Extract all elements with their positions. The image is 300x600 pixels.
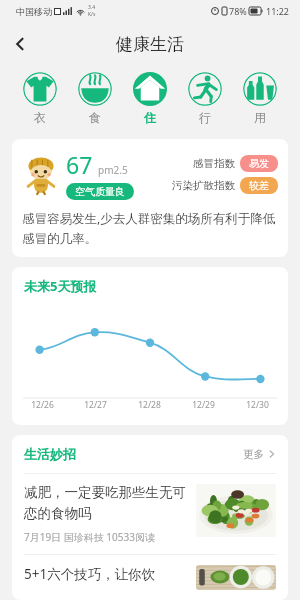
- button[interactable]: 生活妙招: [12, 435, 288, 473]
- staticText: 12/29: [192, 399, 215, 411]
- button[interactable]: Back: [0, 24, 40, 64]
- staticText: 中国移动: [16, 6, 52, 17]
- staticText: 12/30: [246, 399, 269, 411]
- button[interactable]: 食: [72, 70, 118, 127]
- staticText: 易发: [249, 157, 269, 170]
- staticText: K/s: [88, 11, 96, 18]
- staticText: 住: [144, 110, 156, 125]
- button[interactable]: 衣: [17, 70, 63, 127]
- staticText: 行: [199, 110, 211, 125]
- button[interactable]: 用: [237, 70, 283, 127]
- button[interactable]: 行: [182, 70, 228, 127]
- staticText: pm2.5: [98, 163, 128, 177]
- staticText: 健康生活: [116, 34, 184, 55]
- button[interactable]: 未来5天预报: [12, 267, 288, 425]
- staticText: 衣: [34, 110, 46, 125]
- staticText: 空气质量良: [75, 185, 125, 198]
- staticText: 减肥，一定要吃那些生无可恋的食物吗: [24, 484, 186, 522]
- button[interactable]: 5+1六个技巧，让你饮: [12, 555, 288, 600]
- staticText: 12/27: [84, 399, 107, 411]
- staticText: 12/28: [138, 399, 161, 411]
- staticText: 污染扩散指数: [172, 179, 235, 192]
- staticText: 感冒容易发生,少去人群密集的场所有利于降低感冒的几率。: [22, 210, 278, 247]
- staticText: 67: [66, 149, 93, 180]
- staticText: 11:22: [266, 5, 290, 17]
- button[interactable]: 减肥，一定要吃那些生无可恋的食物吗: [12, 474, 288, 554]
- button[interactable]: 住: [127, 70, 173, 127]
- staticText: 较差: [249, 179, 269, 192]
- staticText: 用: [254, 110, 266, 125]
- staticText: 更多: [243, 448, 264, 461]
- staticText: 生活妙招: [24, 446, 76, 462]
- staticText: 5+1六个技巧，让你饮: [24, 565, 156, 583]
- staticText: 食: [89, 110, 101, 125]
- staticText: 感冒指数: [193, 157, 235, 170]
- button[interactable]: 67: [12, 139, 288, 257]
- staticText: 78%: [229, 5, 247, 17]
- staticText: 7月19日 国珍科技 10533阅读: [24, 530, 155, 544]
- staticText: 12/26: [31, 399, 54, 411]
- staticText: 3.4: [88, 4, 96, 11]
- staticText: 未来5天预报: [24, 277, 97, 295]
